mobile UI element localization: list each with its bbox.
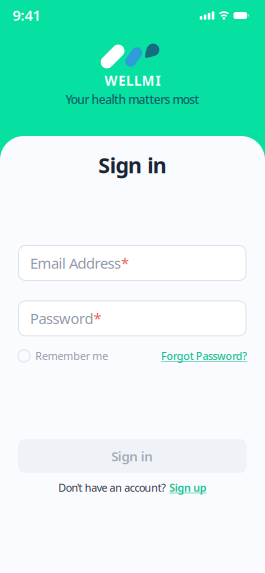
staticText: Remember me — [35, 349, 108, 363]
staticText: * — [121, 253, 129, 273]
staticText: Sign in — [98, 151, 167, 179]
button[interactable]: Remember me — [17, 349, 108, 363]
staticText: Your health matters most — [65, 91, 200, 107]
staticText: E — [118, 72, 125, 89]
staticText: Sign up — [169, 480, 207, 495]
staticText: Password — [30, 309, 93, 328]
staticText: Sign in — [111, 447, 153, 465]
staticText: W — [104, 72, 117, 89]
button[interactable]: Sign up — [169, 480, 207, 495]
staticText: * — [93, 309, 101, 328]
staticText: 9:41 — [12, 5, 40, 25]
button[interactable]: Forgot Password? — [161, 349, 247, 363]
staticText: L — [126, 72, 133, 89]
staticText: L — [134, 72, 141, 89]
staticText: I — [155, 72, 160, 89]
staticText: Email Address — [30, 253, 121, 273]
staticText: Don't have an account? — [58, 480, 166, 495]
staticText: Forgot Password? — [161, 349, 247, 363]
button[interactable]: Sign in — [18, 439, 246, 473]
staticText: M — [142, 72, 155, 89]
